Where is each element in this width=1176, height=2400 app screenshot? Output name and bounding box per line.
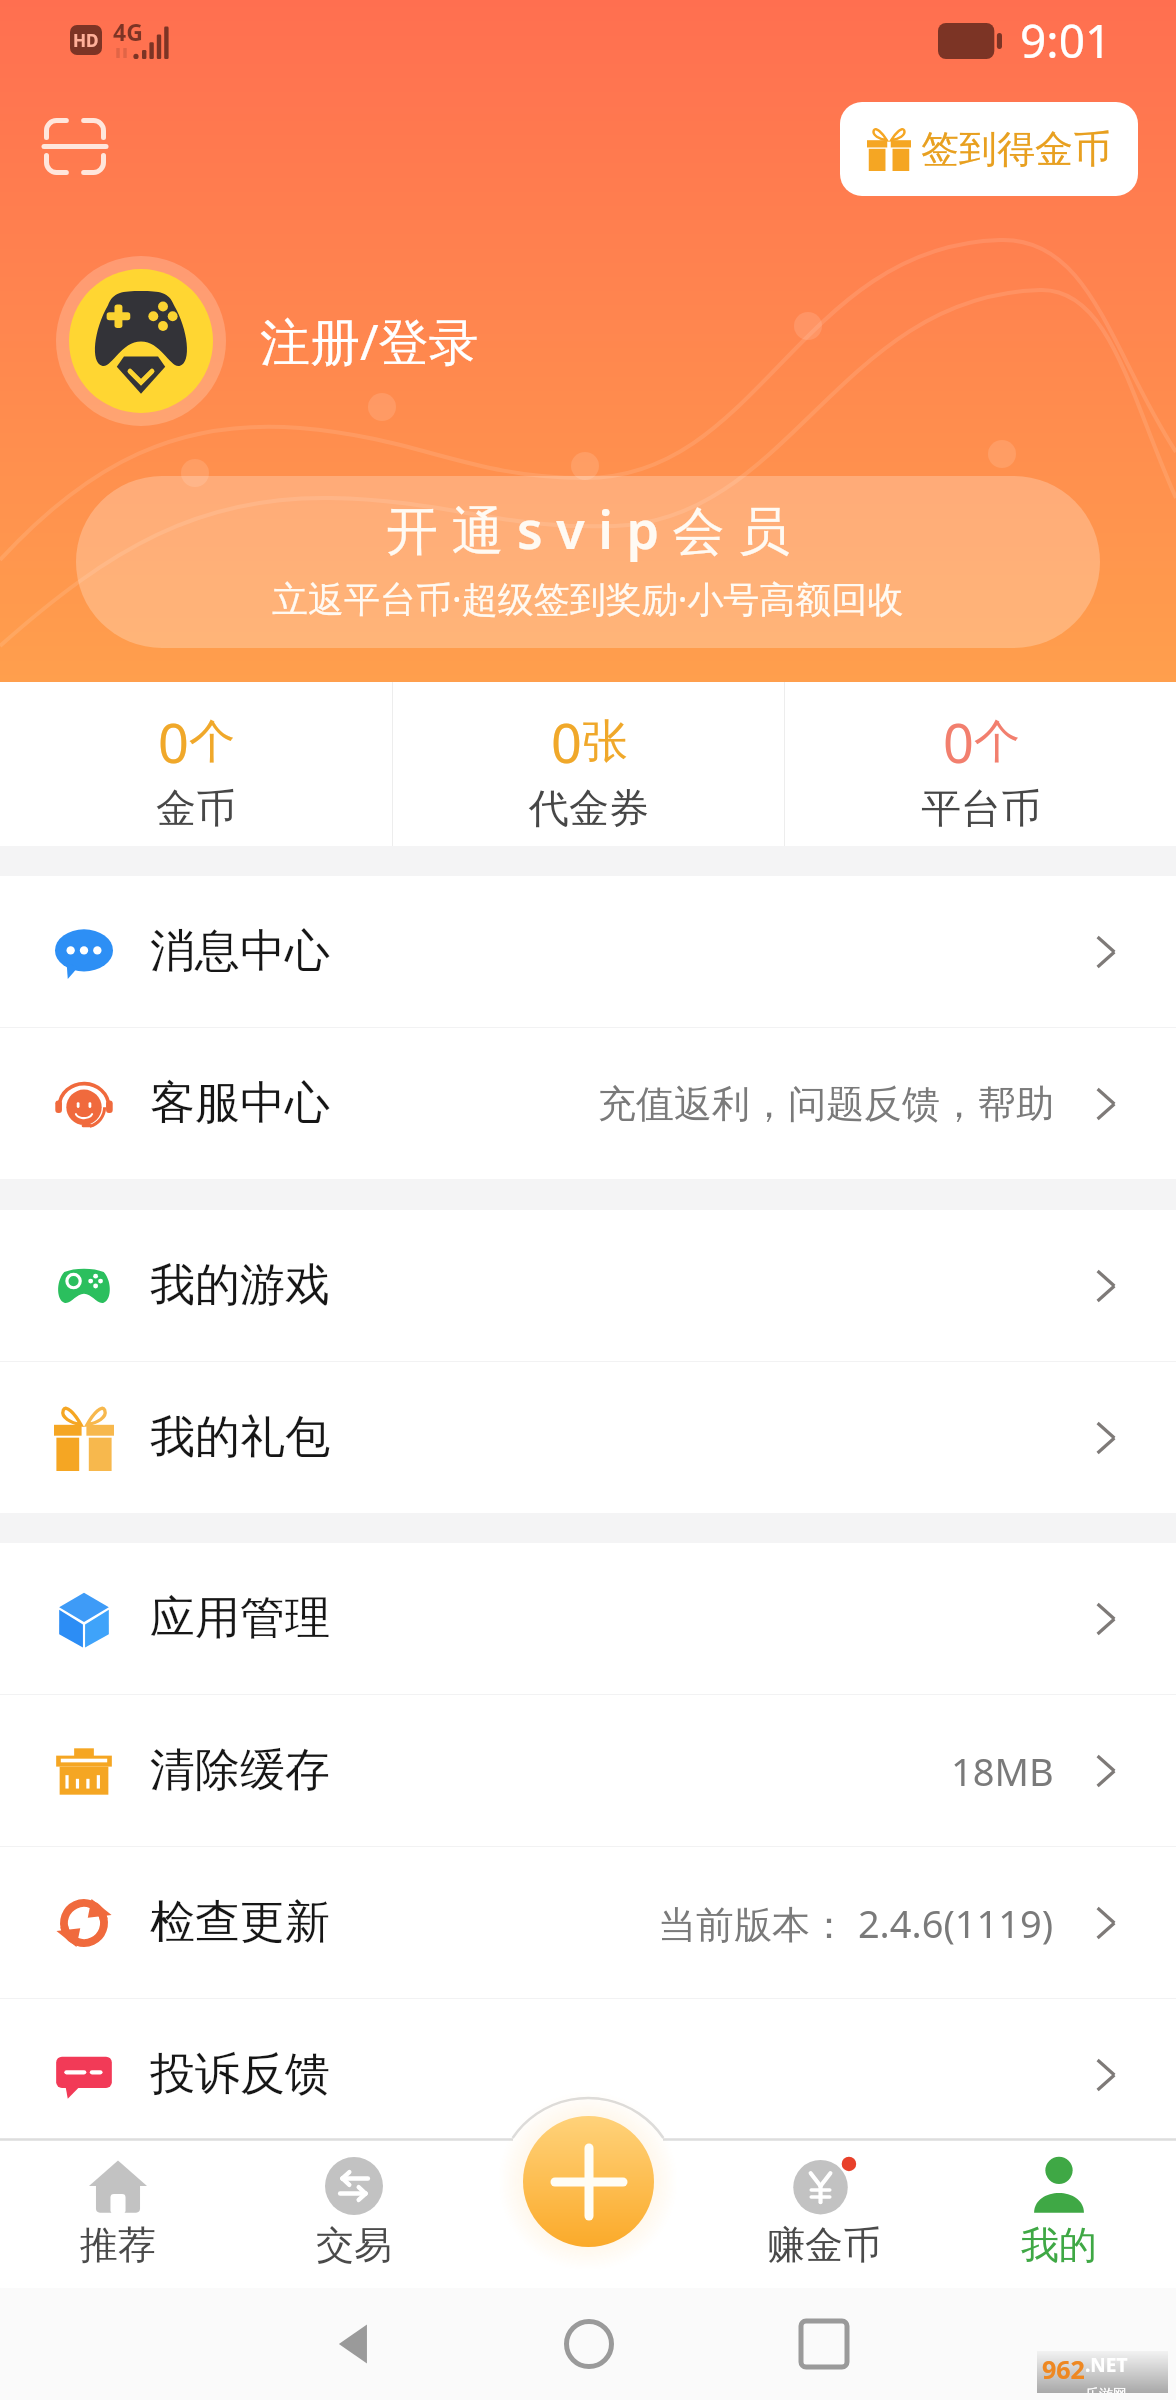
button[interactable]: 消息中心 xyxy=(0,876,1176,1027)
button[interactable]: 清除缓存 xyxy=(0,1695,1176,1846)
staticText: 平台币 xyxy=(921,783,1041,833)
button[interactable]: Recent apps xyxy=(706,2288,941,2400)
staticText: 投诉反馈 xyxy=(150,2046,330,2103)
staticText: 0 xyxy=(551,705,582,779)
button[interactable]: 交易 xyxy=(236,2138,471,2288)
button[interactable]: 我的游戏 xyxy=(0,1210,1176,1361)
staticText: .NET xyxy=(1085,2352,1128,2378)
button[interactable]: Home xyxy=(471,2288,706,2400)
button[interactable]: 0 xyxy=(0,682,392,846)
staticText: 赚金币 xyxy=(767,2221,881,2269)
staticText: 清除缓存 xyxy=(150,1742,330,1799)
staticText: 0 xyxy=(943,705,974,779)
staticText: 张 xyxy=(582,713,628,771)
staticText: 客服中心 xyxy=(150,1075,330,1132)
staticText: HD xyxy=(73,29,99,52)
staticText: 个 xyxy=(974,713,1020,771)
button[interactable]: 0 xyxy=(785,682,1176,846)
button[interactable]: 签到得金币 xyxy=(840,102,1138,196)
staticText: 我的 xyxy=(1021,2221,1097,2269)
button[interactable]: 推荐 xyxy=(0,2138,236,2288)
staticText: 注册/登录 xyxy=(260,307,479,375)
button[interactable]: Add xyxy=(523,2116,654,2247)
button[interactable]: Back xyxy=(236,2288,471,2400)
staticText: 0 xyxy=(158,705,189,779)
staticText: 18MB xyxy=(951,1745,1054,1797)
button[interactable]: 注册/登录 xyxy=(56,256,479,426)
staticText: 我的游戏 xyxy=(150,1257,330,1314)
staticText: 我的礼包 xyxy=(150,1409,330,1466)
staticText: 签到得金币 xyxy=(921,125,1111,173)
staticText: 962 xyxy=(1042,2352,1085,2386)
button[interactable]: 投诉反馈 xyxy=(0,1999,1176,2150)
button[interactable]: 我的礼包 xyxy=(0,1362,1176,1513)
button[interactable]: 我的 xyxy=(941,2138,1176,2288)
button[interactable]: 应用管理 xyxy=(0,1543,1176,1694)
button[interactable]: 检查更新 xyxy=(0,1847,1176,1998)
staticText: 消息中心 xyxy=(150,923,330,980)
staticText: 4G xyxy=(113,16,143,47)
button[interactable]: 客服中心 xyxy=(0,1028,1176,1179)
button[interactable]: 赚金币 xyxy=(706,2138,941,2288)
staticText: 乐游网 xyxy=(1085,2386,1127,2393)
staticText: 代金券 xyxy=(529,783,649,833)
staticText: 当前版本： 2.4.6(1119) xyxy=(658,1897,1054,1949)
staticText: 推荐 xyxy=(80,2221,156,2269)
staticText: 9:01 xyxy=(1020,9,1112,72)
staticText: 交易 xyxy=(316,2221,392,2269)
staticText: 检查更新 xyxy=(150,1894,330,1951)
staticText: 开 通 s v i p 会 员 xyxy=(386,493,790,564)
staticText: 充值返利，问题反馈，帮助 xyxy=(598,1080,1054,1128)
button[interactable]: 开 通 s v i p 会 员 xyxy=(76,476,1100,648)
staticText: 立返平台币·超级签到奖励·小号高额回收 xyxy=(272,574,904,623)
staticText: 个 xyxy=(189,713,235,771)
staticText: 金币 xyxy=(156,783,236,833)
button[interactable]: 0 xyxy=(393,682,784,846)
button[interactable]: Scan xyxy=(44,118,106,175)
staticText: 应用管理 xyxy=(150,1590,330,1647)
